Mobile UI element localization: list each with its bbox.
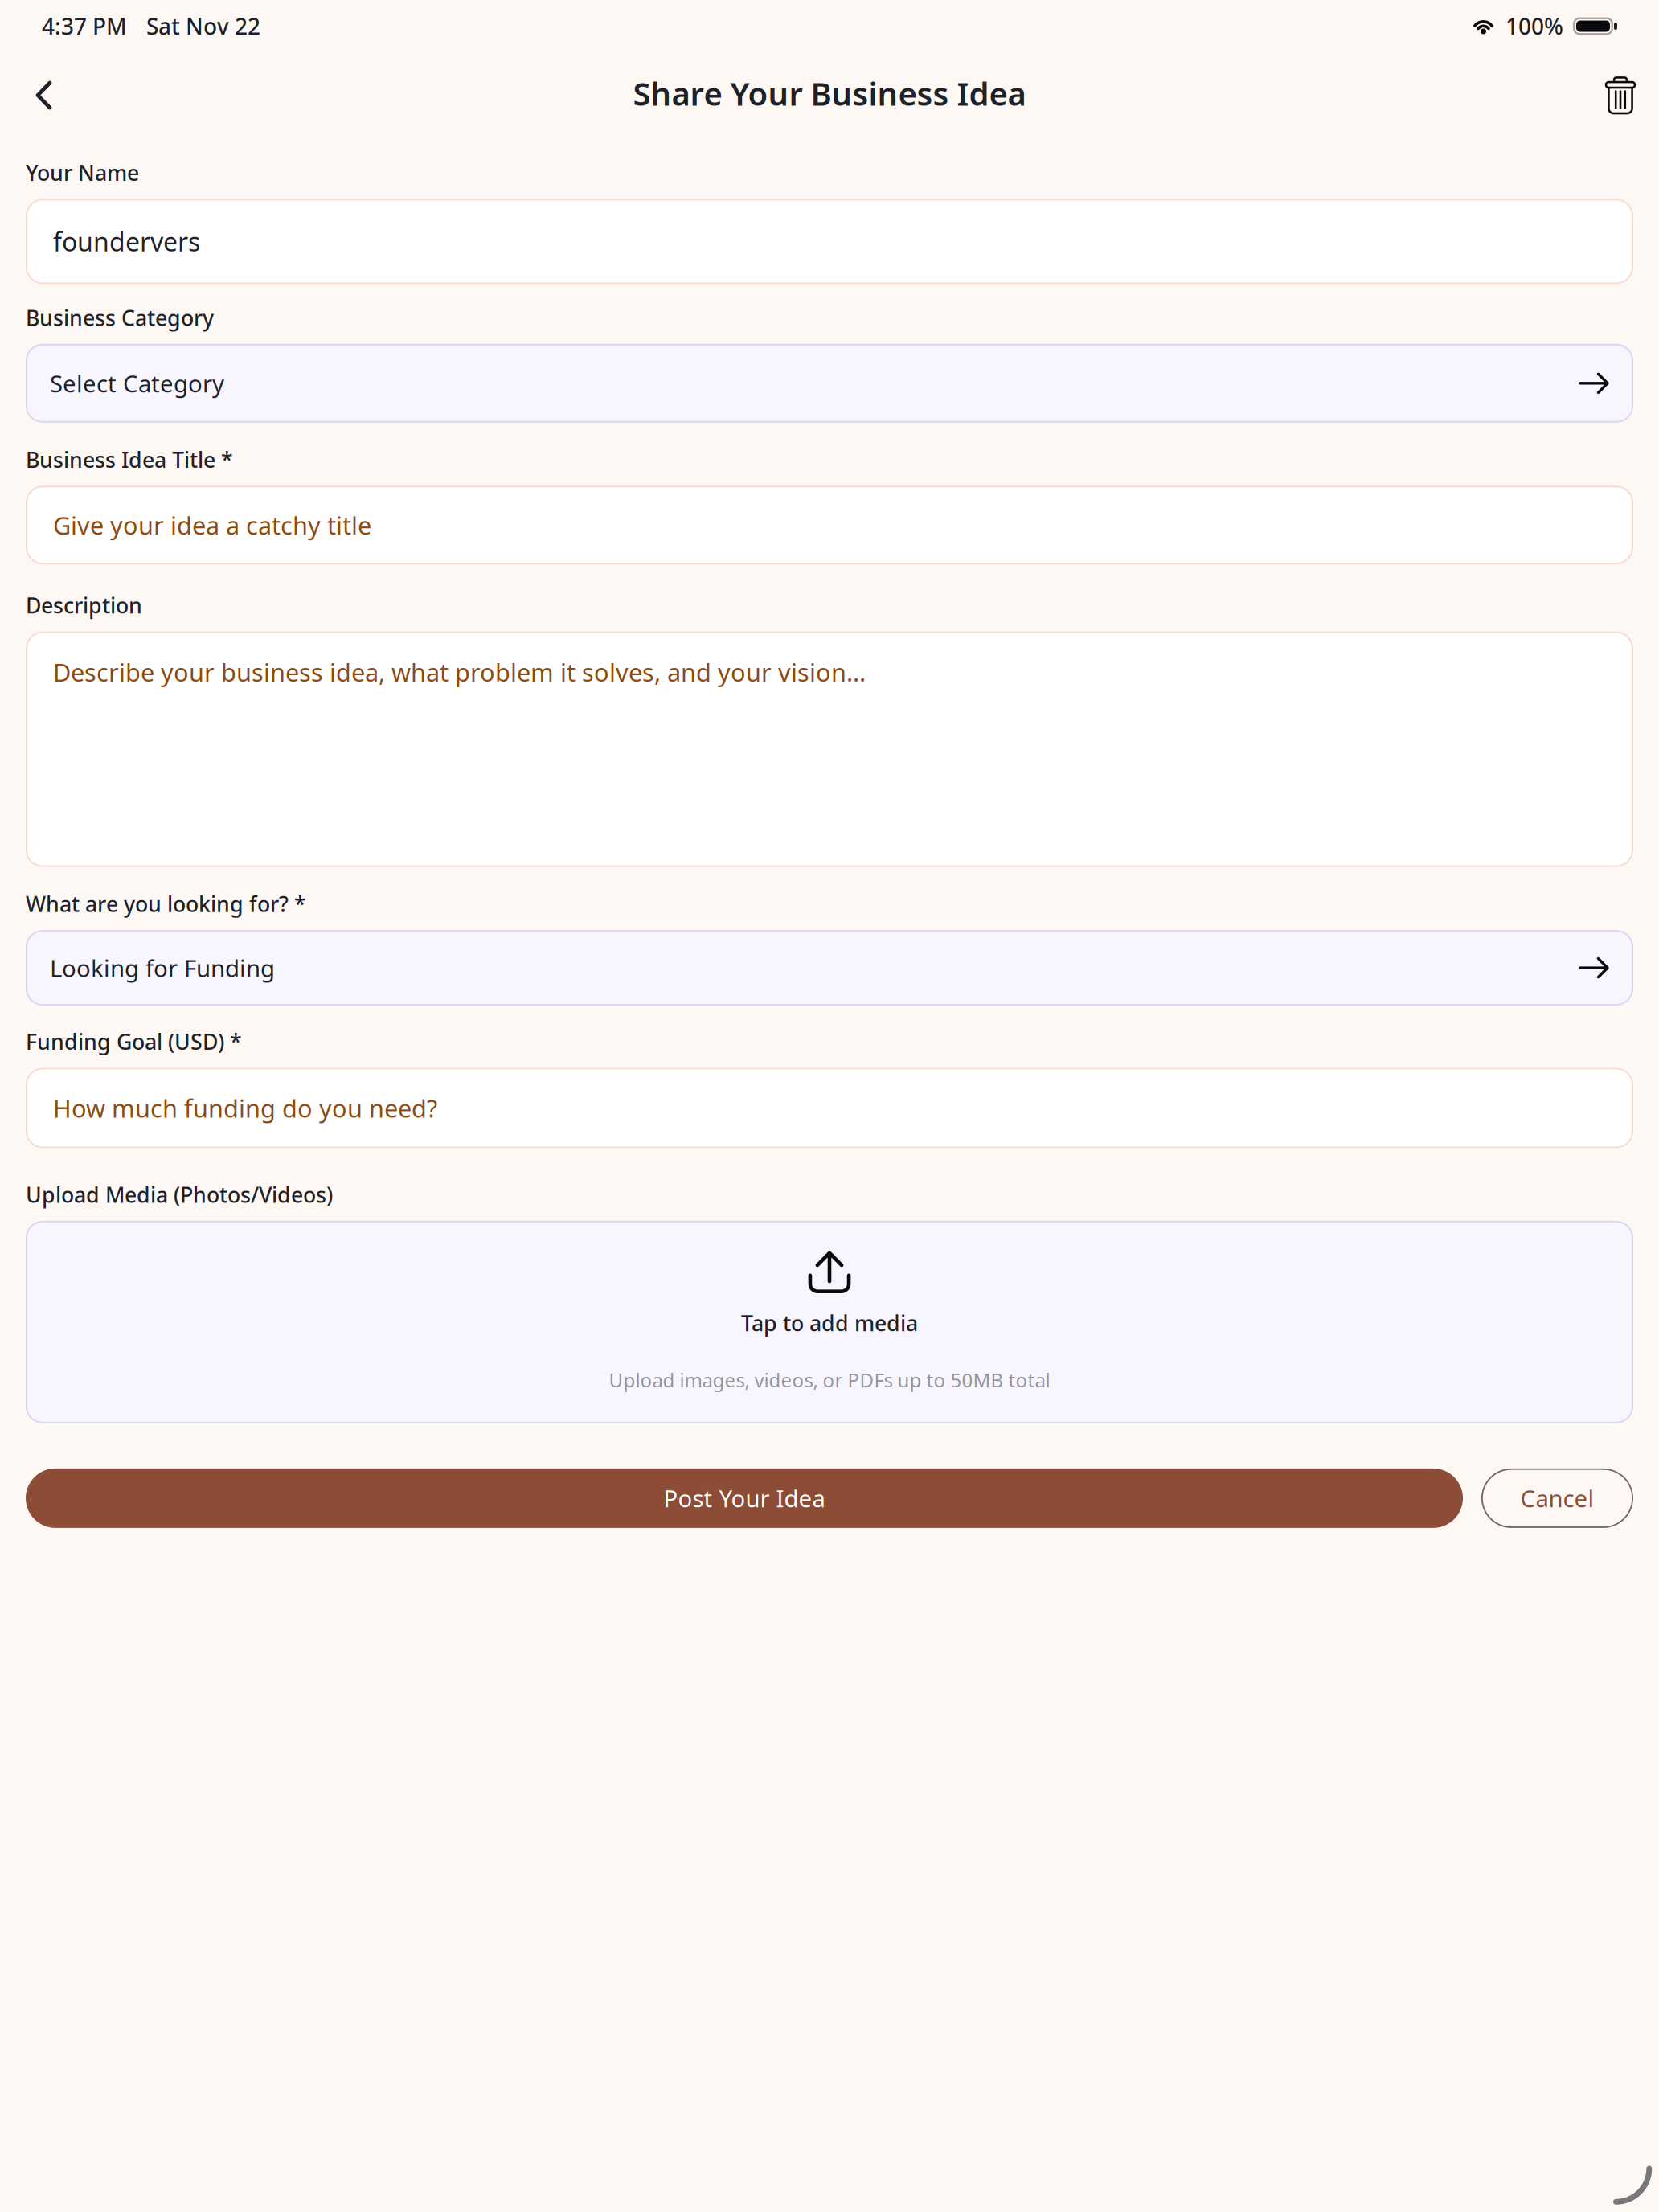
button[interactable]: Looking for Funding	[26, 930, 1633, 1006]
staticText: Post Your Idea	[664, 1482, 825, 1514]
button[interactable]: Post Your Idea	[26, 1468, 1463, 1528]
button[interactable]: Select Category	[26, 344, 1633, 423]
staticText: Share Your Business Idea	[633, 72, 1026, 115]
button[interactable]: Cancel	[1481, 1468, 1633, 1528]
staticText: 100%	[1505, 11, 1563, 41]
staticText: Upload Media (Photos/Videos)	[26, 1180, 333, 1209]
staticText: Looking for Funding	[50, 952, 275, 984]
staticText: Sat Nov 22	[146, 11, 260, 41]
staticText: Description	[26, 591, 142, 619]
staticText: foundervers	[53, 224, 200, 259]
staticText: Business Idea Title *	[26, 445, 233, 474]
staticText: Give your idea a catchy title	[53, 509, 371, 541]
staticText: Cancel	[1520, 1482, 1594, 1514]
staticText: What are you looking for? *	[26, 890, 306, 918]
staticText: Tap to add media	[741, 1309, 918, 1337]
button[interactable]: How much funding do you need?	[26, 1068, 1633, 1148]
staticText: Select Category	[50, 368, 224, 399]
staticText: Describe your business idea, what proble…	[53, 656, 866, 688]
button[interactable]: Describe your business idea, what proble…	[26, 632, 1633, 867]
staticText: 4:37 PM	[42, 11, 127, 41]
staticText: How much funding do you need?	[53, 1092, 437, 1124]
staticText: Your Name	[26, 158, 139, 187]
staticText: Upload images, videos, or PDFs up to 50M…	[609, 1367, 1050, 1393]
button[interactable]: Back	[0, 63, 77, 128]
button[interactable]: Give your idea a catchy title	[26, 486, 1633, 564]
button[interactable]: foundervers	[26, 199, 1633, 284]
staticText: Funding Goal (USD) *	[26, 1027, 242, 1056]
button[interactable]: Tap to add media	[26, 1221, 1633, 1423]
staticText: Business Category	[26, 303, 214, 332]
button[interactable]: Delete	[1579, 61, 1659, 129]
